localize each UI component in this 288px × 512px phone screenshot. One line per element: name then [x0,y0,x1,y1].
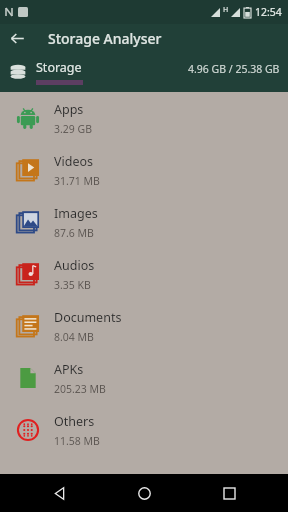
button[interactable]: Audios [0,248,288,300]
staticText: Audios [54,257,95,274]
staticText: Apps [54,101,84,118]
button[interactable]: Others [0,404,288,456]
staticText: APKs [54,361,84,378]
staticText: 3.29 GB [54,122,93,136]
staticText: 12:54 [255,5,282,19]
staticText: Documents [54,309,122,326]
button[interactable]: Images [0,196,288,248]
staticText: Others [54,413,95,430]
button[interactable]: Storage [0,52,288,92]
staticText: Storage Analyser [48,29,162,48]
staticText: 8.04 MB [54,330,94,344]
staticText: 3.35 KB [54,278,91,292]
button[interactable]: Videos [0,144,288,196]
button[interactable]: APKs [0,352,288,404]
staticText: Images [54,205,98,222]
staticText: 87.6 MB [54,226,94,240]
staticText: H [223,5,229,15]
button[interactable]: Recent apps [203,474,255,512]
button[interactable]: Apps [0,92,288,144]
staticText: 11.58 MB [54,434,100,448]
button[interactable]: Back [0,24,34,52]
button[interactable]: Back [33,474,85,512]
staticText: 4.96 GB / 25.38 GB [188,62,280,76]
button[interactable]: Documents [0,300,288,352]
staticText: 31.71 MB [54,174,100,188]
staticText: Videos [54,153,94,170]
button[interactable]: Home [118,474,170,512]
staticText: Storage [36,59,82,76]
staticText: 205.23 MB [54,382,106,396]
